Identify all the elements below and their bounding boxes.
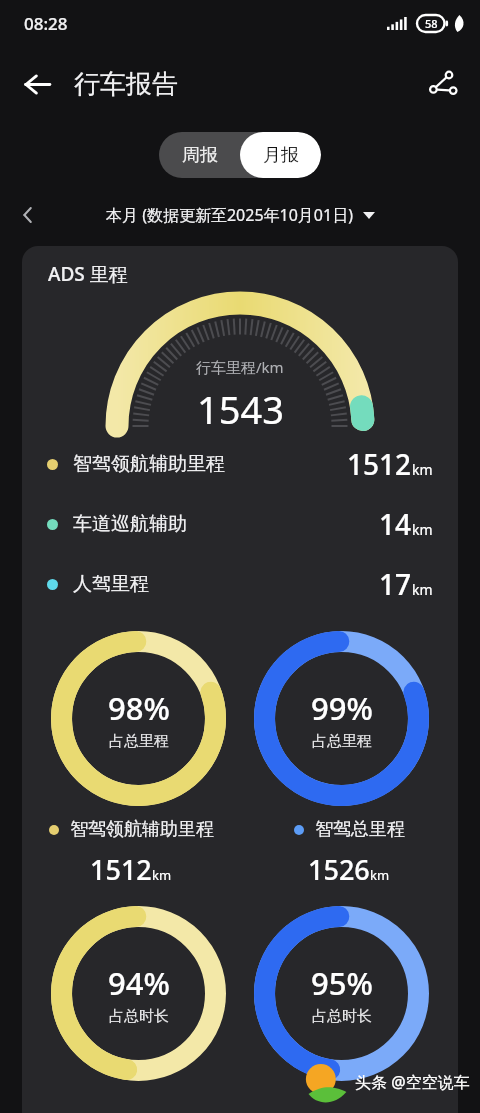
button[interactable]: 智驾领航辅助里程 xyxy=(22,818,240,888)
button[interactable]: 智驾总里程 xyxy=(240,818,458,888)
button[interactable]: 98% xyxy=(51,631,226,806)
staticText: km xyxy=(412,460,433,479)
button[interactable]: 智驾领航辅助里程 xyxy=(22,445,458,483)
button[interactable]: 车道巡航辅助 xyxy=(22,505,458,543)
staticText: 14 xyxy=(379,505,412,543)
staticText: 智驾领航辅助里程 xyxy=(73,452,225,476)
button[interactable]: 99% xyxy=(254,631,429,806)
staticText: km xyxy=(152,866,172,884)
button[interactable]: 周报 xyxy=(159,132,240,178)
staticText: 08:28 xyxy=(24,12,68,35)
staticText: km xyxy=(412,520,433,539)
button[interactable]: 94% xyxy=(51,906,226,1081)
staticText: ADS 里程 xyxy=(48,261,128,287)
staticText: km xyxy=(412,580,433,599)
staticText: 智驾总里程 xyxy=(315,818,405,841)
staticText: 占总里程 xyxy=(109,732,169,751)
staticText: 1512 xyxy=(347,445,412,483)
button[interactable]: Share xyxy=(416,57,470,111)
staticText: 94% xyxy=(108,962,170,1004)
button[interactable]: Previous period xyxy=(12,202,44,228)
staticText: 1512 xyxy=(90,851,152,888)
staticText: 头条 @空空说车 xyxy=(355,1071,470,1093)
staticText: 人驾里程 xyxy=(73,572,149,596)
staticText: km xyxy=(370,866,390,884)
staticText: 98% xyxy=(108,687,170,729)
staticText: 行车里程/km xyxy=(196,357,284,377)
staticText: 车道巡航辅助 xyxy=(73,512,187,536)
button[interactable]: Back xyxy=(10,57,64,111)
staticText: 1526 xyxy=(308,851,370,888)
staticText: 95% xyxy=(311,962,373,1004)
staticText: 占总里程 xyxy=(312,732,372,751)
button[interactable]: 95% xyxy=(254,906,429,1081)
staticText: 智驾领航辅助里程 xyxy=(70,818,214,841)
button[interactable]: 本月 (数据更新至2025年10月01日) xyxy=(102,202,379,228)
staticText: 1543 xyxy=(197,383,284,435)
staticText: 行车报告 xyxy=(74,68,178,101)
button[interactable]: 人驾里程 xyxy=(22,565,458,603)
staticText: 占总时长 xyxy=(312,1007,372,1026)
staticText: 99% xyxy=(311,687,373,729)
staticText: 本月 (数据更新至2025年10月01日) xyxy=(106,204,353,226)
staticText: 58 xyxy=(425,16,438,31)
staticText: 占总时长 xyxy=(109,1007,169,1026)
staticText: 月报 xyxy=(263,144,299,167)
button[interactable]: 月报 xyxy=(240,132,321,178)
staticText: 周报 xyxy=(182,144,218,167)
staticText: 17 xyxy=(379,565,412,603)
